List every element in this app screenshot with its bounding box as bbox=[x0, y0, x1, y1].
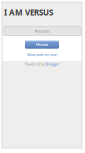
staticText: Blogger bbox=[45, 61, 59, 67]
button[interactable]: Blogger bbox=[45, 61, 59, 67]
button[interactable]: View web version bbox=[2, 51, 82, 57]
staticText: Home bbox=[36, 42, 48, 47]
staticText: I AM VERSUS bbox=[4, 7, 53, 18]
staticText: Powered by bbox=[24, 61, 44, 67]
button[interactable]: Home bbox=[25, 40, 59, 48]
staticText: No posts. bbox=[34, 28, 50, 34]
staticText: View web version bbox=[27, 52, 57, 57]
